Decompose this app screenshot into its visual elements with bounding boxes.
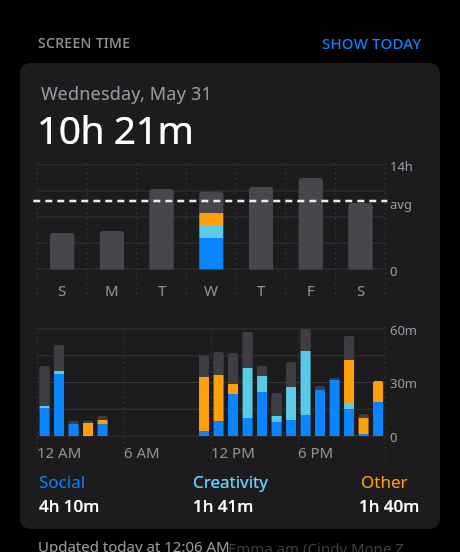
button[interactable]: SHOW TODAY: [322, 33, 422, 53]
staticText: 6 AM: [124, 442, 160, 462]
staticText: Updated today at 12:06 AM: [38, 536, 230, 552]
staticText: F: [307, 280, 315, 297]
staticText: Emma am (Cindy Mone Z: [228, 538, 404, 552]
staticText: T: [257, 280, 266, 297]
staticText: 10h 21m: [37, 102, 194, 155]
staticText: S: [58, 280, 67, 297]
staticText: 0: [390, 428, 398, 446]
staticText: 12 PM: [211, 442, 255, 462]
staticText: S: [357, 280, 366, 297]
button[interactable]: Social: [39, 470, 86, 493]
button[interactable]: Other: [361, 470, 408, 493]
staticText: 14h: [390, 157, 413, 175]
staticText: 4h 10m: [39, 494, 100, 517]
staticText: Social: [39, 470, 86, 493]
staticText: Wednesday, May 31: [41, 81, 212, 106]
staticText: 60m: [390, 321, 418, 339]
staticText: T: [158, 280, 167, 297]
staticText: M: [105, 280, 119, 297]
staticText: 1h 41m: [193, 494, 254, 517]
staticText: 30m: [390, 374, 418, 392]
staticText: 0: [390, 262, 398, 280]
staticText: Other: [361, 470, 408, 493]
staticText: 12 AM: [37, 442, 82, 462]
staticText: SHOW TODAY: [322, 33, 422, 53]
staticText: SCREEN TIME: [38, 33, 131, 52]
staticText: 1h 40m: [359, 494, 420, 517]
staticText: W: [204, 280, 218, 297]
staticText: avg: [390, 195, 412, 213]
staticText: Creativity: [193, 470, 268, 493]
staticText: 6 PM: [298, 442, 334, 462]
button[interactable]: Wednesday, May 31: [20, 63, 440, 529]
button[interactable]: Creativity: [193, 470, 268, 493]
